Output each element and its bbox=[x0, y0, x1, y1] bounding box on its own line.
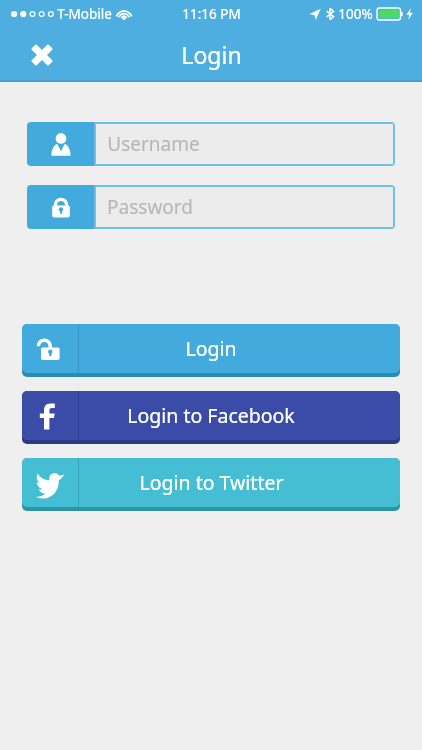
button[interactable]: Login to Facebook bbox=[22, 391, 400, 444]
staticText: Login bbox=[181, 39, 242, 70]
staticText: Username bbox=[107, 131, 200, 157]
button[interactable]: Close bbox=[18, 31, 66, 79]
button[interactable]: Login to Twitter bbox=[22, 458, 400, 511]
staticText: T-Mobile bbox=[57, 5, 112, 23]
button[interactable]: Password bbox=[27, 185, 395, 229]
staticText: 100% bbox=[338, 5, 373, 23]
staticText: Login to Facebook bbox=[127, 402, 295, 429]
staticText: 11:16 PM bbox=[182, 5, 241, 23]
staticText: Login to Twitter bbox=[139, 469, 284, 496]
button[interactable]: Login bbox=[22, 324, 400, 377]
staticText: Password bbox=[107, 194, 193, 220]
staticText: Login bbox=[185, 335, 237, 362]
button[interactable]: Username bbox=[27, 122, 395, 166]
